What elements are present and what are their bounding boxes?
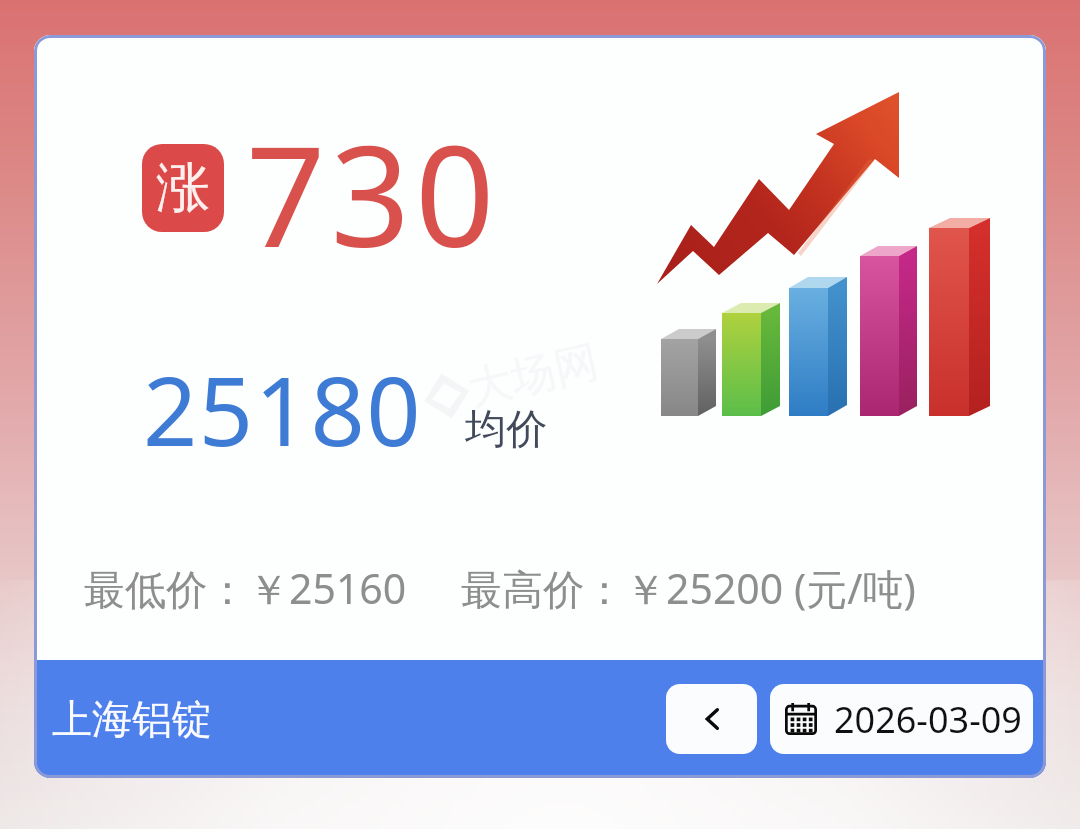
button[interactable]: Previous day (666, 684, 757, 754)
staticText: 最低价：￥25160 (84, 560, 407, 616)
staticText: 上海铝锭 (52, 694, 212, 744)
button[interactable]: 2026-03-09 (770, 684, 1033, 754)
staticText: 730 (246, 98, 500, 287)
staticText: 均价 (465, 404, 547, 456)
staticText: 大场网 (463, 334, 604, 417)
staticText: 2026-03-09 (834, 695, 1022, 744)
staticText: 25180 (143, 344, 423, 473)
staticText: 涨 (156, 154, 210, 222)
staticText: 最高价：￥25200 (元/吨) (461, 560, 916, 616)
